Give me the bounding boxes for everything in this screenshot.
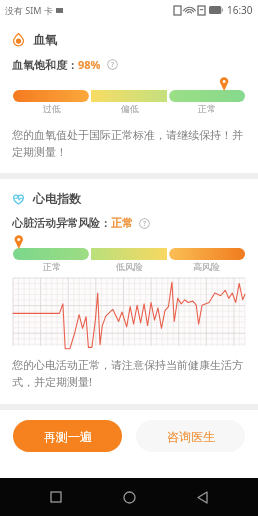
staticText: 正常 <box>198 103 216 114</box>
staticText: ? <box>143 219 147 229</box>
staticText: 正常 <box>43 261 61 272</box>
staticText: 心电指数 <box>33 191 81 206</box>
staticText: 低风险 <box>116 261 143 272</box>
staticText: 高风险 <box>193 261 220 272</box>
button[interactable]: 帮助 <box>107 59 118 70</box>
staticText: 您的血氧值处于国际正常标准，请继续保持！并定期测量！ <box>12 128 244 159</box>
button[interactable]: 返回 <box>185 480 219 514</box>
button[interactable]: 主页 <box>112 480 146 514</box>
button[interactable]: 再测一遍 <box>13 420 122 452</box>
staticText: 再测一遍 <box>44 429 92 444</box>
staticText: 心脏活动异常风险：正常 <box>12 216 133 230</box>
button[interactable]: 最近任务 <box>39 480 73 514</box>
staticText: 过低 <box>43 103 61 114</box>
staticText: 您的心电活动正常，请注意保持当前健康生活方式，并定期测量! <box>12 358 244 390</box>
staticText: 没有 SIM 卡 <box>5 4 53 16</box>
staticText: 偏低 <box>121 103 139 114</box>
button[interactable]: 帮助 <box>139 218 150 229</box>
staticText: 16:30 <box>227 3 253 17</box>
staticText: ? <box>111 60 115 70</box>
staticText: 咨询医生 <box>167 429 215 444</box>
staticText: 血氧 <box>33 32 57 47</box>
staticText: 血氧饱和度：98% <box>12 57 101 72</box>
button[interactable]: 咨询医生 <box>136 420 245 452</box>
